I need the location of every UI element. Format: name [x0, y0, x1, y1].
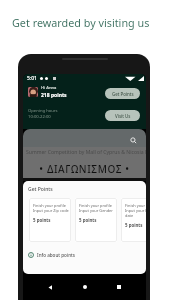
staticText: 5 points	[79, 217, 97, 223]
button[interactable]: Recents	[112, 280, 126, 294]
button[interactable]: Info about points	[28, 252, 76, 258]
button[interactable]: Home	[78, 280, 92, 294]
staticText: 10:00-22:00	[28, 114, 51, 120]
button[interactable]: Get Points	[105, 88, 140, 99]
staticText: Input your Zip code	[33, 208, 69, 213]
staticText: Visit Us	[115, 113, 131, 119]
other: Search	[130, 137, 137, 144]
staticText: Hi Anna	[41, 85, 57, 91]
staticText: Get Points	[28, 186, 53, 193]
staticText: 5 points	[125, 222, 143, 228]
button[interactable]: Finish your profile	[29, 198, 71, 242]
staticText: Input your Gender	[79, 208, 113, 213]
staticText: Finish your profile	[33, 203, 66, 208]
button[interactable]: Search	[23, 129, 146, 147]
staticText: Get Points	[112, 91, 134, 97]
staticText: 5 points	[33, 217, 51, 223]
staticText: 5:01	[27, 75, 37, 82]
staticText: Get rewarded by visiting us	[12, 15, 150, 30]
staticText: Input your birth date	[125, 208, 146, 218]
staticText: Summer Competition by Mall of Cyprus & N…	[26, 149, 146, 156]
staticText: Opening hours	[28, 108, 58, 114]
button[interactable]: Finish your profile	[75, 198, 117, 242]
button[interactable]: Back	[43, 280, 57, 294]
button[interactable]: Visit Us	[105, 110, 140, 121]
staticText: Info about points	[37, 252, 76, 258]
button[interactable]: Finish your profile	[121, 198, 146, 242]
staticText: • ΔΙΑΓΩΝΙΣΜΟΣ •	[23, 162, 146, 176]
staticText: 218 points	[41, 92, 67, 99]
staticText: Finish your profile	[79, 203, 112, 208]
staticText: Finish your profile	[125, 203, 146, 208]
